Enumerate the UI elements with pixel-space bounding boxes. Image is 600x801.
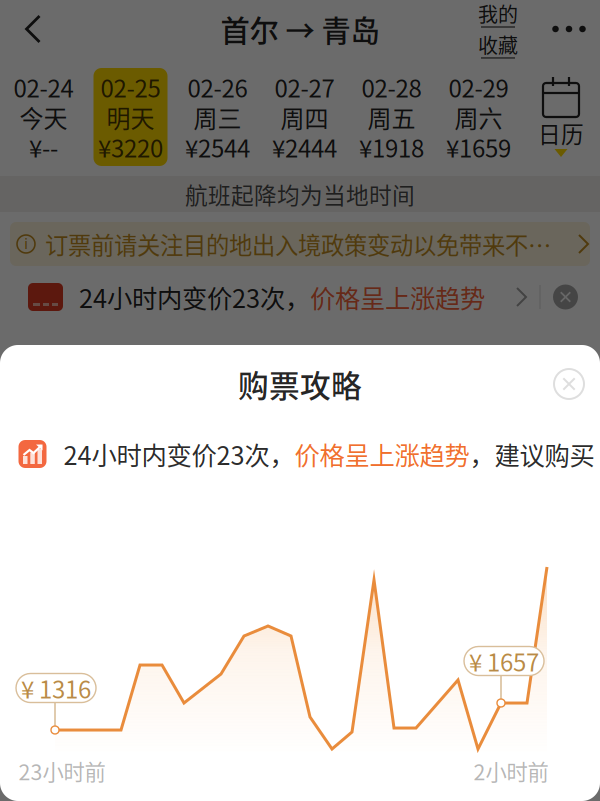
- staticText: ¥1918: [359, 130, 424, 164]
- button[interactable]: 24小时内变价23次，: [0, 270, 600, 324]
- button[interactable]: 02-26: [180, 68, 254, 166]
- staticText: 02-25: [100, 70, 160, 104]
- staticText: 周五: [367, 100, 415, 134]
- staticText: 02-29: [448, 70, 508, 104]
- staticText: ¥2544: [185, 130, 250, 164]
- staticText: 航班起降均为当地时间: [185, 178, 415, 210]
- button[interactable]: i: [10, 222, 590, 266]
- staticText: 日历: [538, 117, 584, 149]
- staticText: ¥ 1657: [469, 644, 539, 678]
- staticText: 价格呈上涨趋势: [310, 279, 485, 315]
- staticText: ¥ 1316: [21, 671, 91, 705]
- button[interactable]: 我的: [458, 0, 538, 58]
- staticText: 订票前请关注目的地出入境政策变动以免带来不…: [45, 227, 551, 261]
- staticText: 02-27: [274, 70, 334, 104]
- button[interactable]: 日历: [522, 68, 600, 166]
- staticText: 02-28: [361, 70, 421, 104]
- staticText: 24小时内变价23次，: [63, 436, 294, 472]
- staticText: 收藏: [478, 30, 518, 59]
- staticText: i: [24, 235, 28, 253]
- staticText: 02-24: [13, 70, 73, 104]
- staticText: 购票攻略: [238, 362, 362, 406]
- staticText: ¥3220: [98, 130, 163, 164]
- button[interactable]: 02-29: [441, 68, 515, 166]
- staticText: 24小时内变价23次，: [79, 279, 310, 315]
- staticText: 首尔 → 青岛: [220, 8, 379, 50]
- staticText: 23小时前: [18, 756, 105, 786]
- staticText: 今天: [19, 100, 67, 134]
- staticText: 周三: [193, 100, 241, 134]
- staticText: 周四: [280, 100, 328, 134]
- button[interactable]: 02-25: [93, 68, 167, 166]
- staticText: ¥2444: [272, 130, 337, 164]
- staticText: 明天: [106, 100, 154, 134]
- button[interactable]: 关闭: [538, 353, 600, 415]
- button[interactable]: 02-28: [354, 68, 428, 166]
- staticText: 我的: [478, 0, 518, 28]
- staticText: 价格呈上涨趋势: [294, 436, 469, 472]
- staticText: 周六: [454, 100, 502, 134]
- button[interactable]: 返回: [0, 0, 65, 58]
- button[interactable]: 更多: [538, 0, 600, 58]
- button[interactable]: 02-27: [267, 68, 341, 166]
- staticText: ¥1659: [446, 130, 511, 164]
- button[interactable]: 02-24: [6, 68, 80, 166]
- staticText: ¥--: [29, 130, 58, 164]
- staticText: 02-26: [187, 70, 247, 104]
- staticText: 2小时前: [473, 756, 548, 786]
- staticText: ，建议购买: [469, 436, 594, 472]
